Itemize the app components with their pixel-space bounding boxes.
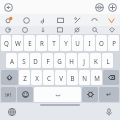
staticText: N — [82, 74, 87, 82]
button[interactable]: R — [36, 35, 47, 51]
button[interactable]: P — [108, 35, 119, 51]
button[interactable]: G — [54, 53, 65, 68]
button[interactable]: Category 4 — [72, 15, 82, 25]
staticText: T — [52, 39, 56, 47]
button[interactable]: A — [6, 53, 17, 68]
button[interactable]: I — [84, 35, 95, 51]
button[interactable]: Category 2 — [38, 15, 48, 25]
button[interactable]: Add — [107, 2, 117, 12]
button[interactable]: K — [90, 53, 101, 68]
button[interactable]: U — [72, 35, 83, 51]
button[interactable]: S — [18, 53, 29, 68]
staticText: B — [70, 74, 75, 82]
staticText: I — [88, 39, 91, 47]
staticText: S — [22, 57, 26, 65]
button[interactable]: Space — [34, 87, 81, 102]
button[interactable]: Settings — [82, 87, 98, 102]
button[interactable]: !#1 — [1, 87, 16, 102]
button[interactable]: H — [66, 53, 77, 68]
button[interactable]: Z — [19, 70, 30, 85]
button[interactable]: Tool 5 — [73, 26, 81, 34]
staticText: X — [35, 74, 39, 82]
button[interactable]: Shift — [1, 70, 18, 85]
staticText: R — [40, 39, 44, 47]
button[interactable]: W — [12, 35, 23, 51]
button[interactable]: B — [67, 70, 78, 85]
button[interactable]: Tool 6 — [91, 26, 99, 34]
button[interactable]: ↵ — [99, 87, 119, 102]
button[interactable]: Back — [3, 2, 13, 12]
button[interactable]: Tool 3 — [39, 26, 47, 34]
staticText: J — [83, 57, 85, 65]
staticText: V — [59, 74, 63, 82]
button[interactable]: Tool 1 — [4, 26, 12, 34]
staticText: !#1 — [5, 92, 12, 98]
button[interactable]: Emoji keyboard — [17, 87, 33, 102]
button[interactable]: M — [91, 70, 102, 85]
staticText: G — [57, 57, 62, 65]
staticText: P — [112, 39, 116, 47]
button[interactable]: Category 3 — [55, 15, 65, 25]
button[interactable]: V — [55, 70, 66, 85]
button[interactable]: Category 6 — [106, 15, 116, 25]
staticText: H — [69, 57, 74, 65]
staticText: W — [15, 39, 21, 47]
button[interactable]: Y — [60, 35, 71, 51]
button[interactable]: Stickers — [4, 15, 14, 25]
button[interactable]: J — [78, 53, 89, 68]
staticText: ↵ — [106, 91, 112, 99]
button[interactable]: O — [96, 35, 107, 51]
staticText: Q — [4, 39, 9, 47]
staticText: Z — [23, 74, 27, 82]
staticText: Y — [64, 39, 68, 47]
staticText: O — [99, 39, 104, 47]
staticText: C — [47, 74, 51, 82]
button[interactable]: F — [42, 53, 53, 68]
button[interactable]: E — [24, 35, 35, 51]
staticText: F — [46, 57, 50, 65]
button[interactable]: Category 1 — [21, 15, 31, 25]
button[interactable]: Change keyboard language — [6, 106, 17, 117]
button[interactable]: C — [43, 70, 54, 85]
button[interactable]: Category 5 — [89, 15, 99, 25]
staticText: E — [28, 39, 32, 47]
button[interactable]: X — [31, 70, 42, 85]
button[interactable]: Q — [1, 35, 11, 51]
button[interactable]: D — [30, 53, 41, 68]
button[interactable]: Emoji — [94, 2, 104, 12]
staticText: D — [33, 57, 38, 65]
button[interactable]: T — [48, 35, 59, 51]
button[interactable]: Tool 2 — [21, 26, 29, 34]
staticText: M — [94, 74, 100, 82]
staticText: U — [75, 39, 80, 47]
staticText: L — [106, 57, 110, 65]
staticText: A — [10, 57, 14, 65]
button[interactable]: Voice input — [103, 106, 114, 117]
staticText: K — [94, 57, 98, 65]
button[interactable]: Backspace — [103, 70, 119, 85]
button[interactable]: N — [79, 70, 90, 85]
button[interactable]: Tool 7 — [108, 26, 116, 34]
button[interactable]: Tool 4 — [56, 26, 64, 34]
button[interactable]: L — [102, 53, 113, 68]
